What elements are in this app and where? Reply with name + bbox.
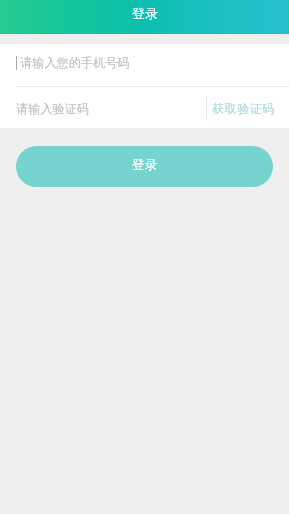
staticText: 请输入您的手机号码 [20, 55, 130, 70]
staticText: 获取验证码 [212, 101, 275, 116]
staticText: 请输入验证码 [16, 101, 90, 116]
button[interactable]: 请输入验证码 [0, 87, 289, 128]
staticText: 登录 [132, 157, 157, 173]
button[interactable]: 手机号码输入框 [0, 44, 289, 86]
button[interactable]: 获取验证码 [207, 100, 289, 116]
staticText: 登录 [132, 5, 158, 21]
button[interactable]: 登录 [16, 146, 273, 187]
